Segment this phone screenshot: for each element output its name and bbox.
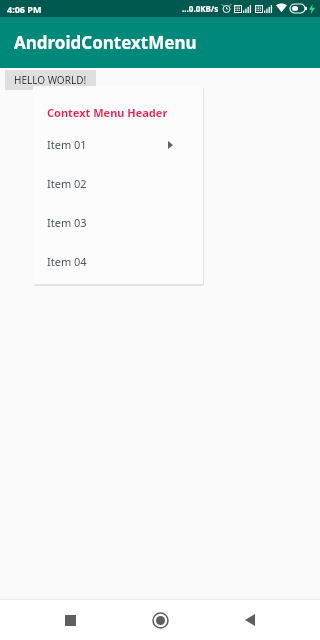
staticText: …0.0KB/s xyxy=(182,3,219,14)
staticText: AndroidContextMenu xyxy=(14,31,197,54)
staticText: Item 02 xyxy=(47,176,87,191)
button[interactable]: HELLO WORLD! xyxy=(5,70,96,90)
button[interactable]: Recent apps xyxy=(50,600,90,640)
other: Open submenu xyxy=(168,141,173,149)
button[interactable]: Home xyxy=(140,600,180,640)
staticText: Item 01 xyxy=(47,137,87,152)
button[interactable]: Item 01 xyxy=(33,125,203,164)
staticText: Item 03 xyxy=(47,215,87,230)
button[interactable]: Back xyxy=(230,600,270,640)
button[interactable]: Item 04 xyxy=(33,242,203,281)
staticText: 4:06 PM xyxy=(7,3,42,15)
staticText: Item 04 xyxy=(47,254,87,269)
staticText: HELLO WORLD! xyxy=(14,73,87,87)
button[interactable]: Item 03 xyxy=(33,203,203,242)
staticText: Context Menu Header xyxy=(47,105,168,120)
button[interactable]: Context Menu Header xyxy=(33,100,203,125)
button[interactable]: Item 02 xyxy=(33,164,203,203)
